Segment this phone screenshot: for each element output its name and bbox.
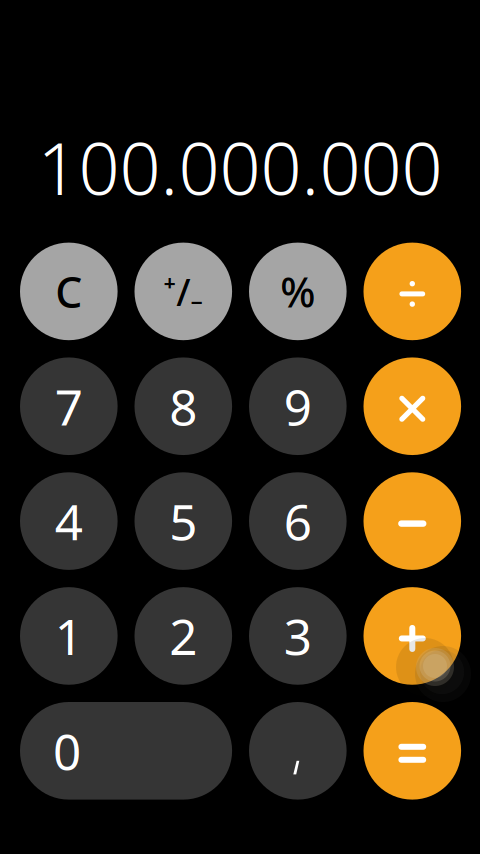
button[interactable]: 4 <box>20 472 118 570</box>
button[interactable]: Subtract <box>363 472 461 570</box>
staticText: 9 <box>284 373 312 439</box>
button[interactable]: Divide <box>363 243 461 340</box>
staticText: 100.000.000 <box>37 119 442 215</box>
button[interactable]: 1 <box>20 587 118 685</box>
button[interactable]: 8 <box>134 357 232 455</box>
button[interactable]: Decimal separator <box>249 702 347 800</box>
button[interactable]: Equals <box>363 702 461 800</box>
button[interactable]: Add <box>363 587 461 685</box>
staticText: 0 <box>53 718 81 783</box>
staticText: 6 <box>284 488 312 554</box>
button[interactable]: 6 <box>249 472 347 570</box>
staticText: 4 <box>55 488 83 554</box>
button[interactable]: 2 <box>134 587 232 685</box>
staticText: 8 <box>169 373 197 439</box>
staticText: 7 <box>55 373 83 439</box>
staticText: 5 <box>169 488 197 554</box>
button[interactable]: 0 <box>20 702 232 800</box>
button[interactable]: Clear <box>20 243 118 340</box>
staticText: C <box>55 263 82 320</box>
staticText: 3 <box>284 603 312 669</box>
button[interactable]: 3 <box>249 587 347 685</box>
button[interactable]: 5 <box>134 472 232 570</box>
button[interactable]: 9 <box>249 357 347 455</box>
button[interactable]: Multiply <box>363 357 461 455</box>
staticText: 1 <box>55 603 83 669</box>
staticText: % <box>280 264 315 319</box>
button[interactable]: Percent <box>249 243 347 340</box>
button[interactable]: Toggle sign <box>134 243 232 340</box>
button[interactable]: 7 <box>20 357 118 455</box>
staticText: ⁺/₋ <box>163 267 203 316</box>
staticText: 2 <box>169 603 197 669</box>
